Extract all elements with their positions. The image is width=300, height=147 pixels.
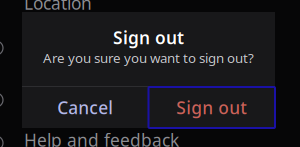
- staticText: Cancel: [57, 96, 113, 119]
- staticText: Location: [24, 0, 92, 14]
- button[interactable]: Location: [0, 0, 296, 10]
- staticText: Sign out: [176, 96, 247, 119]
- staticText: Help and feedback: [24, 128, 179, 147]
- staticText: Are you sure you want to sign out?: [43, 49, 254, 67]
- staticText: Sign out: [113, 26, 184, 49]
- button[interactable]: Sign out: [148, 87, 275, 128]
- button[interactable]: Cancel: [22, 87, 148, 128]
- button[interactable]: Help and feedback: [0, 133, 296, 147]
